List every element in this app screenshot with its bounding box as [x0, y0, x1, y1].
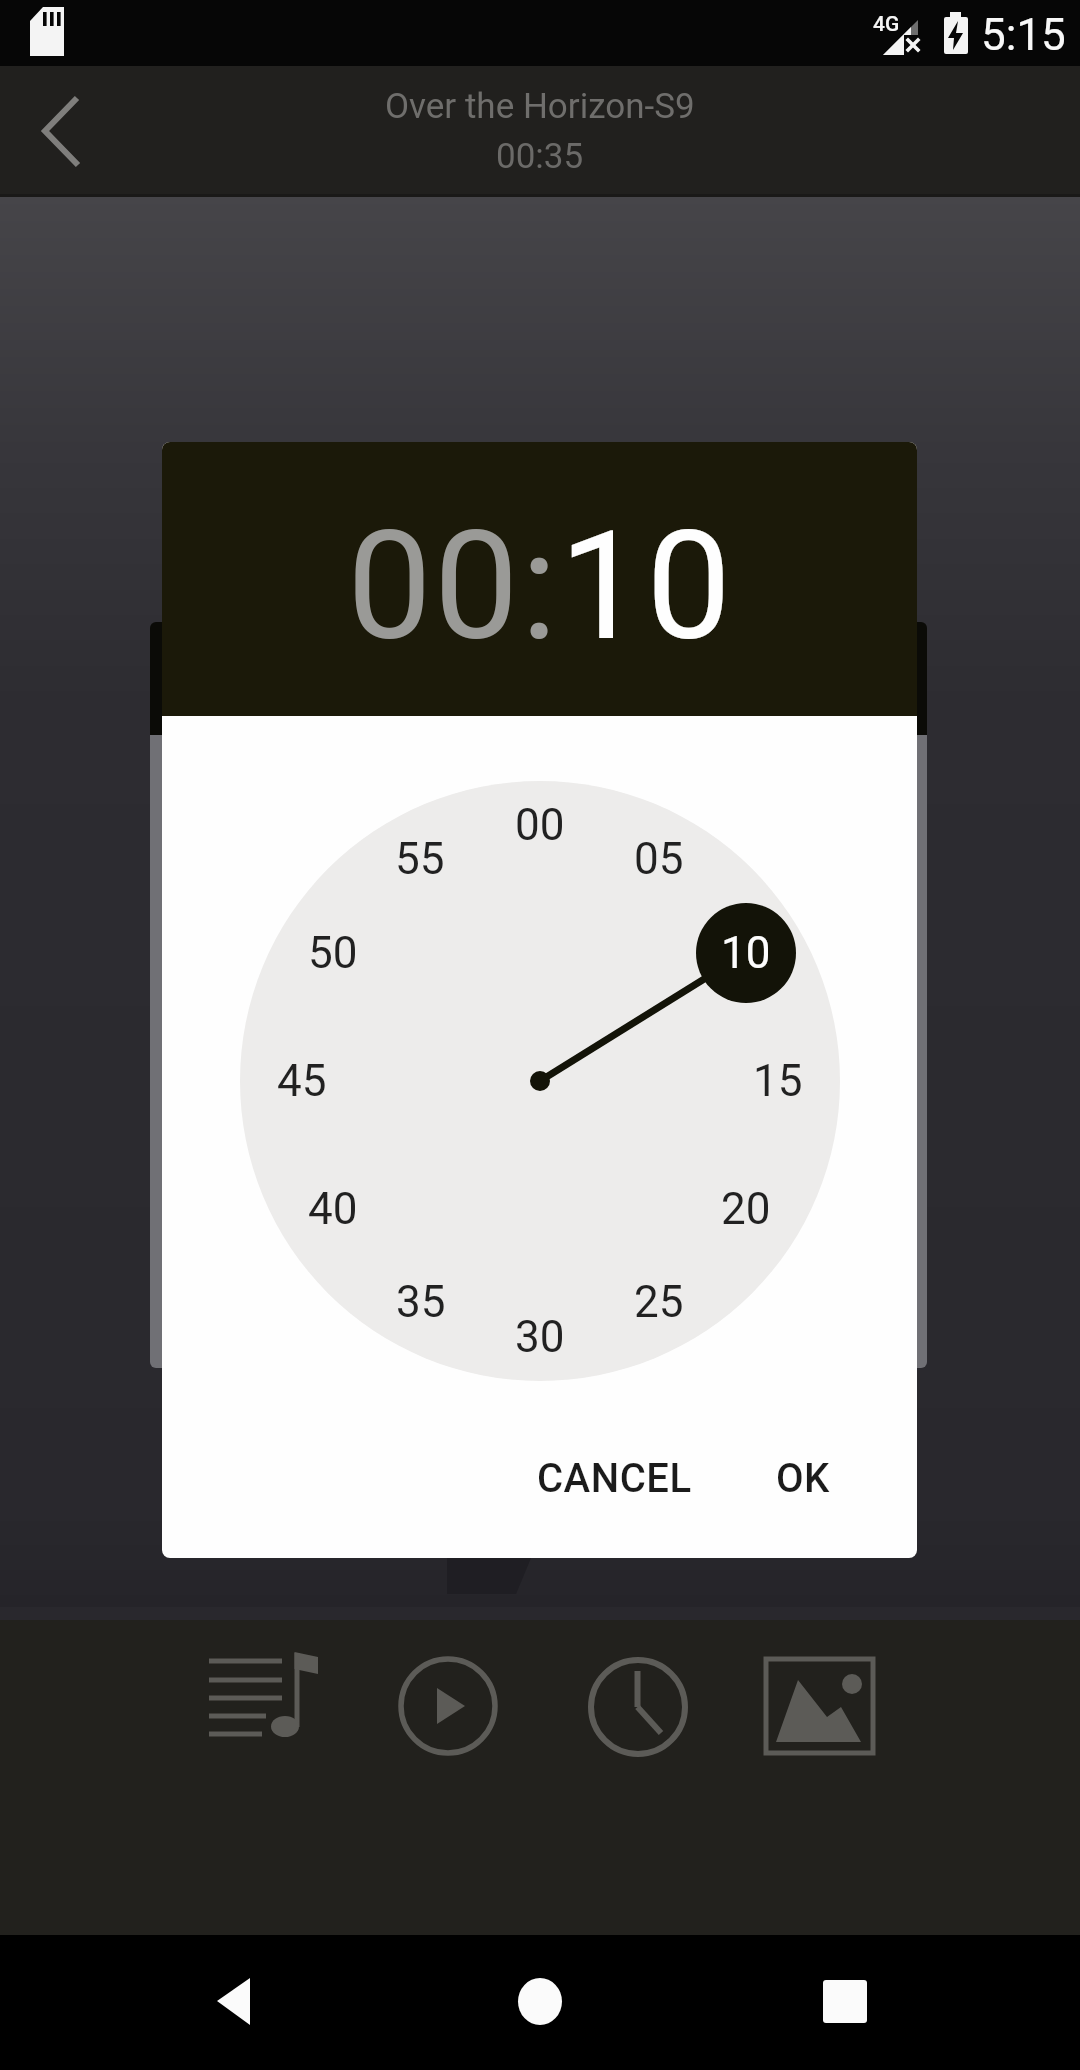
staticText: 5:15: [981, 9, 1066, 61]
staticText: Over the Horizon-S9: [385, 86, 695, 127]
button[interactable]: 05: [614, 829, 704, 889]
staticText: 4G: [873, 12, 900, 37]
button[interactable]: [195, 1640, 330, 1760]
button[interactable]: 45: [257, 1051, 347, 1111]
button[interactable]: CANCEL: [504, 1437, 724, 1519]
button[interactable]: [460, 1941, 620, 2063]
staticText: 35: [396, 1276, 446, 1328]
button[interactable]: 20: [701, 1179, 791, 1239]
staticText: 05: [634, 833, 684, 885]
button[interactable]: [765, 1941, 925, 2063]
button[interactable]: 55: [375, 829, 465, 889]
button[interactable]: 40: [288, 1179, 378, 1239]
staticText: CANCEL: [537, 1455, 692, 1502]
button[interactable]: 10: [701, 923, 791, 983]
staticText: OK: [776, 1455, 830, 1502]
button[interactable]: OK: [738, 1437, 868, 1519]
button[interactable]: 35: [376, 1272, 466, 1332]
button[interactable]: [18, 76, 108, 186]
staticText: 00:10: [347, 498, 734, 675]
staticText: 50: [308, 927, 358, 979]
staticText: 15: [753, 1055, 803, 1107]
staticText: 55: [395, 833, 445, 885]
staticText: 00: [515, 799, 565, 851]
button[interactable]: [388, 1646, 508, 1766]
staticText: 40: [308, 1183, 358, 1235]
staticText: 10: [721, 927, 771, 979]
button[interactable]: 30: [495, 1307, 585, 1367]
button[interactable]: [157, 1941, 317, 2063]
button[interactable]: 25: [614, 1272, 704, 1332]
staticText: 45: [277, 1055, 327, 1107]
staticText: 20: [721, 1183, 771, 1235]
staticText: 00:35: [496, 136, 584, 177]
staticText: 25: [634, 1276, 684, 1328]
button[interactable]: 00: [495, 795, 585, 855]
button[interactable]: [578, 1647, 698, 1767]
button[interactable]: [759, 1645, 881, 1765]
button[interactable]: 50: [288, 923, 378, 983]
button[interactable]: 15: [733, 1051, 823, 1111]
staticText: 30: [515, 1311, 565, 1363]
